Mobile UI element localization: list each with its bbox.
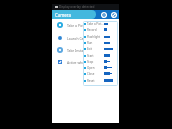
button[interactable]: Launch Came	[52, 33, 83, 43]
button[interactable]: Take a Pict...	[84, 21, 105, 26]
staticText: Run	[87, 41, 93, 45]
staticText: Start	[87, 54, 94, 58]
button[interactable]: Active when a	[52, 57, 83, 67]
staticText: Take Instant P	[67, 48, 90, 53]
button[interactable]: Record	[84, 27, 105, 32]
button[interactable]: Flashlight	[84, 34, 105, 39]
staticText: Exit	[87, 47, 92, 51]
staticText: Record	[87, 28, 97, 32]
staticText: Launch Came	[67, 36, 89, 41]
staticText: Camera	[55, 12, 72, 18]
button[interactable]: Reset	[84, 78, 105, 83]
button[interactable]: Settings	[100, 11, 108, 19]
button[interactable]: Start	[84, 53, 105, 58]
button[interactable]: Run	[84, 40, 105, 45]
staticText: Stop	[87, 60, 94, 64]
button[interactable]: Stop	[84, 59, 105, 64]
staticText: Reset	[87, 79, 95, 83]
staticText: Flashlight	[87, 35, 101, 39]
button[interactable]: Block	[110, 11, 118, 19]
button[interactable]: Open	[84, 65, 105, 70]
staticText: Active when a	[67, 60, 89, 65]
button[interactable]: Close	[84, 71, 105, 76]
button[interactable]: Take Instant P	[52, 45, 83, 55]
button[interactable]: Exit	[84, 46, 105, 51]
staticText: Close	[87, 72, 95, 76]
button[interactable]: Camera	[52, 10, 96, 19]
staticText: Take a Pict...	[87, 22, 104, 26]
button[interactable]: Take a Pict	[52, 20, 83, 30]
staticText: Open	[87, 66, 95, 70]
staticText: Display overlay detected	[59, 5, 95, 9]
staticText: Take a Pict	[67, 23, 84, 28]
